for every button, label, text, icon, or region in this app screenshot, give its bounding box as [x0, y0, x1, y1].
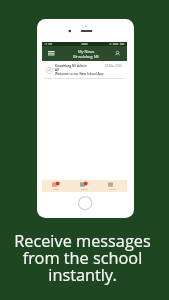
- staticText: Forms: [109, 187, 117, 190]
- staticText: 03 Mar 2020: [105, 64, 122, 68]
- staticText: News: [53, 187, 60, 190]
- button[interactable]: Forms: [99, 180, 127, 192]
- button[interactable]: Open navigation menu: [48, 51, 55, 55]
- button[interactable]: News: [42, 180, 71, 192]
- button[interactable]: Profile: [115, 51, 120, 57]
- staticText: Receive messages from the school instant…: [0, 230, 167, 286]
- button[interactable]: Events: [71, 180, 99, 192]
- staticText: Welcome to our New School App: [55, 72, 104, 76]
- staticText: Kinsalebeg NS: [73, 54, 99, 59]
- staticText: My News: [78, 49, 95, 54]
- button[interactable]: Kinsalebeg NS Admin: [42, 61, 127, 79]
- staticText: Events: [81, 187, 89, 190]
- staticText: All: [55, 68, 59, 72]
- staticText: Kinsalebeg NS Admin: [55, 64, 87, 68]
